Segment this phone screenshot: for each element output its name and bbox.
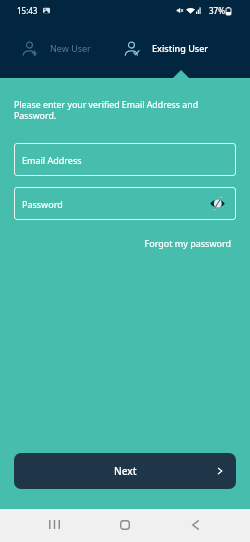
staticText: Next <box>114 464 137 478</box>
button[interactable]: Show password <box>210 196 225 211</box>
button[interactable]: Next <box>14 453 236 489</box>
staticText: Forgot my password <box>144 237 231 249</box>
button[interactable]: Existing User <box>110 26 218 70</box>
button[interactable]: New User <box>8 26 116 70</box>
staticText: Existing User <box>152 42 209 54</box>
button[interactable]: Home <box>107 508 143 541</box>
staticText: New User <box>50 42 91 54</box>
button[interactable]: Back <box>177 508 213 541</box>
button[interactable]: Password <box>14 187 236 220</box>
button[interactable]: Recent apps <box>36 508 72 541</box>
button[interactable]: Email Address <box>14 143 236 176</box>
staticText: Email Address <box>22 154 82 166</box>
staticText: 37% <box>209 5 225 16</box>
staticText: Please enter your verified Email Address… <box>14 99 204 122</box>
staticText: Password <box>22 198 63 210</box>
staticText: 15:43 <box>17 5 38 16</box>
button[interactable]: Forgot my password <box>136 237 231 249</box>
